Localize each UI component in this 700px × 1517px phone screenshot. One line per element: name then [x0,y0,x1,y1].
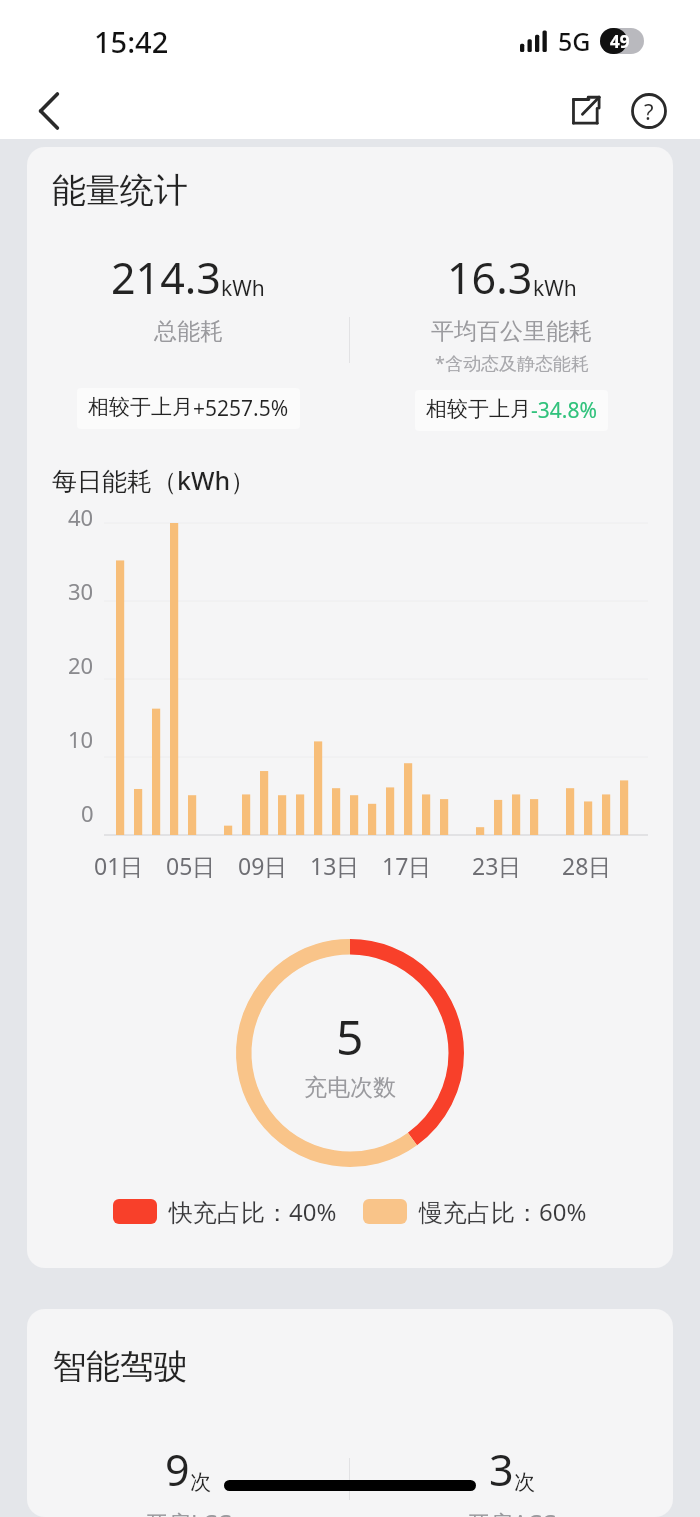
staticText: kWh [221,274,265,303]
staticText: 09日 [238,850,288,881]
staticText: 20 [68,650,94,680]
staticText: 3 [489,1440,514,1499]
staticText: 15:42 [94,22,169,61]
staticText: 能量统计 [52,169,188,212]
staticText: 开启LCC [145,1507,232,1517]
staticText: 23日 [472,850,522,881]
staticText: 5 [336,1004,364,1069]
staticText: 17日 [382,850,432,881]
staticText: 开启ACC [467,1507,556,1517]
staticText: 充电次数 [304,1073,396,1102]
staticText: -34.8% [531,396,597,425]
staticText: 28日 [562,850,612,881]
staticText: 每日能耗（kWh） [52,463,256,497]
staticText: 13日 [310,850,360,881]
button[interactable]: Help [624,86,674,136]
staticText: 214.3 [111,248,221,307]
staticText: kWh [533,274,577,303]
staticText: 01日 [94,850,144,881]
staticText: 慢充占比：60% [419,1195,587,1228]
staticText: 平均百公里能耗 [431,317,592,346]
staticText: 0 [81,798,94,828]
button[interactable]: Back [22,84,76,138]
staticText: *含动态及静态能耗 [435,351,589,376]
staticText: 相较于上月 [426,396,531,422]
staticText: 相较于上月 [88,394,193,420]
staticText: 总能耗 [154,317,223,346]
staticText: 次 [190,1469,211,1495]
staticText: 快充占比：40% [169,1195,337,1228]
staticText: 10 [68,724,94,754]
staticText: 30 [68,576,94,606]
staticText: 9 [165,1440,190,1499]
staticText: 16.3 [447,248,533,307]
staticText: 40 [68,502,94,532]
staticText: 智能驾驶 [52,1345,188,1388]
staticText: 5G [558,24,591,58]
staticText: ? [644,96,654,126]
staticText: 次 [514,1469,535,1495]
staticText: 05日 [166,850,216,881]
staticText: +5257.5% [193,394,289,423]
button[interactable]: Share [560,86,610,136]
staticText: 49 [610,30,630,53]
